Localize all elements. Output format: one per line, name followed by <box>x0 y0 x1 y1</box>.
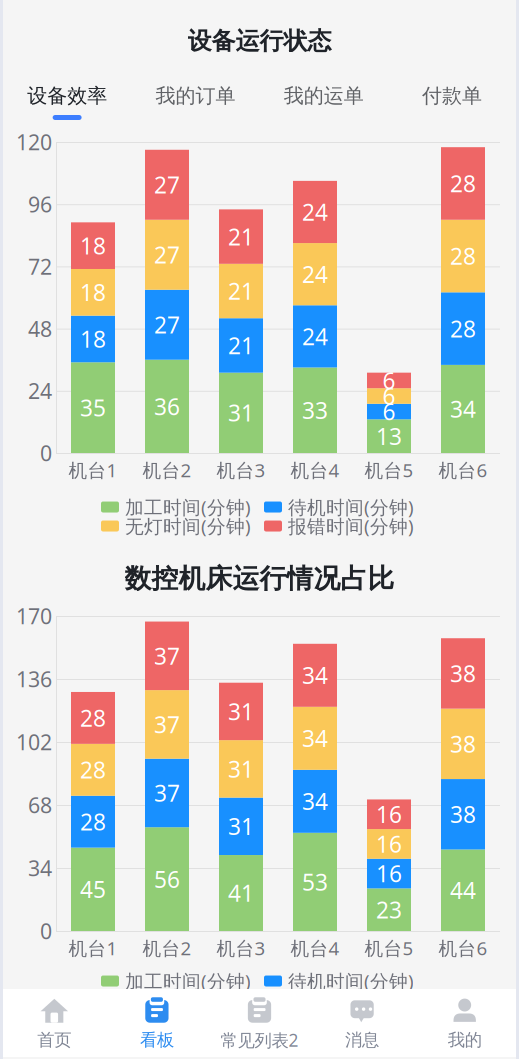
staticText: 机台1 <box>68 458 117 482</box>
staticText: 33 <box>302 395 328 425</box>
staticText: 27 <box>154 170 180 200</box>
staticText: 56 <box>154 864 180 894</box>
staticText: 无灯时间(分钟) <box>125 514 251 538</box>
staticText: 21 <box>228 276 254 306</box>
button[interactable]: 看板 <box>106 989 208 1057</box>
staticText: 待机时间(分钟) <box>288 495 414 519</box>
staticText: 常见列表2 <box>220 1028 298 1051</box>
staticText: 38 <box>450 729 476 759</box>
staticText: 170 <box>16 602 52 630</box>
staticText: 38 <box>450 799 476 829</box>
staticText: 28 <box>80 703 106 733</box>
staticText: 待机时间(分钟) <box>288 969 414 993</box>
staticText: 0 <box>40 917 52 945</box>
staticText: 机台2 <box>142 936 191 960</box>
staticText: 38 <box>450 658 476 688</box>
staticText: 120 <box>16 128 52 156</box>
staticText: 看板 <box>140 1029 174 1051</box>
staticText: 45 <box>80 874 106 904</box>
staticText: 16 <box>376 829 402 859</box>
staticText: 23 <box>376 895 402 925</box>
staticText: 首页 <box>37 1029 71 1051</box>
staticText: 36 <box>154 391 180 421</box>
staticText: 44 <box>450 875 476 905</box>
staticText: 机台5 <box>364 458 413 482</box>
staticText: 18 <box>80 277 106 307</box>
button[interactable]: 消息 <box>311 989 413 1057</box>
staticText: 数控机床运行情况占比 <box>124 562 394 595</box>
staticText: 34 <box>302 786 328 816</box>
staticText: 34 <box>302 723 328 753</box>
staticText: 37 <box>154 709 180 739</box>
staticText: 机台6 <box>438 936 487 960</box>
staticText: 24 <box>302 259 328 289</box>
staticText: 21 <box>228 221 254 252</box>
staticText: 设备运行状态 <box>187 26 331 56</box>
staticText: 31 <box>228 398 254 428</box>
staticText: 6 <box>382 396 395 427</box>
staticText: 31 <box>228 811 254 841</box>
staticText: 37 <box>154 778 180 808</box>
staticText: 24 <box>302 321 328 351</box>
button[interactable]: 我的运单 <box>259 83 388 120</box>
staticText: 48 <box>28 314 52 343</box>
staticText: 我的订单 <box>155 83 235 108</box>
staticText: 机台2 <box>142 458 191 482</box>
staticText: 加工时间(分钟) <box>125 495 251 519</box>
staticText: 报错时间(分钟) <box>288 514 414 538</box>
staticText: 机台3 <box>216 936 265 960</box>
button[interactable]: 我的订单 <box>131 83 259 120</box>
staticText: 设备效率 <box>27 83 107 108</box>
staticText: 35 <box>80 393 106 423</box>
staticText: 0 <box>40 439 52 467</box>
staticText: 13 <box>376 421 402 451</box>
staticText: 机台3 <box>216 458 265 482</box>
button[interactable]: 我的 <box>413 989 516 1057</box>
button[interactable]: 设备效率 <box>3 83 131 120</box>
staticText: 96 <box>28 190 52 218</box>
button[interactable]: 付款单 <box>388 83 516 120</box>
staticText: 28 <box>80 807 106 837</box>
staticText: 34 <box>302 660 328 690</box>
staticText: 24 <box>28 377 52 405</box>
staticText: 16 <box>376 799 402 829</box>
staticText: 27 <box>154 240 180 270</box>
staticText: 18 <box>80 231 106 261</box>
staticText: 6 <box>382 365 395 395</box>
staticText: 27 <box>154 310 180 340</box>
staticText: 34 <box>450 394 476 424</box>
staticText: 24 <box>302 197 328 227</box>
staticText: 付款单 <box>422 83 482 108</box>
staticText: 我的运单 <box>284 83 364 108</box>
staticText: 机台1 <box>68 936 117 960</box>
staticText: 机台6 <box>438 458 487 482</box>
staticText: 72 <box>28 252 52 280</box>
staticText: 21 <box>228 330 254 360</box>
staticText: 28 <box>450 313 476 344</box>
staticText: 41 <box>228 878 254 908</box>
staticText: 我的 <box>448 1029 482 1051</box>
staticText: 37 <box>154 641 180 671</box>
staticText: 68 <box>28 791 52 819</box>
staticText: 机台4 <box>290 458 339 482</box>
staticText: 102 <box>16 728 52 756</box>
staticText: 消息 <box>345 1029 379 1051</box>
staticText: 53 <box>302 867 328 897</box>
button[interactable]: 常见列表2 <box>208 989 311 1057</box>
staticText: 28 <box>80 755 106 785</box>
staticText: 加工时间(分钟) <box>125 969 251 993</box>
staticText: 28 <box>450 168 476 198</box>
staticText: 6 <box>382 381 395 411</box>
staticText: 136 <box>16 665 52 693</box>
button[interactable]: 首页 <box>3 989 106 1057</box>
staticText: 16 <box>376 858 402 889</box>
staticText: 31 <box>228 696 254 726</box>
staticText: 31 <box>228 754 254 784</box>
staticText: 机台4 <box>290 936 339 960</box>
staticText: 18 <box>80 324 106 354</box>
staticText: 机台5 <box>364 936 413 960</box>
staticText: 28 <box>450 241 476 271</box>
staticText: 34 <box>28 854 52 882</box>
